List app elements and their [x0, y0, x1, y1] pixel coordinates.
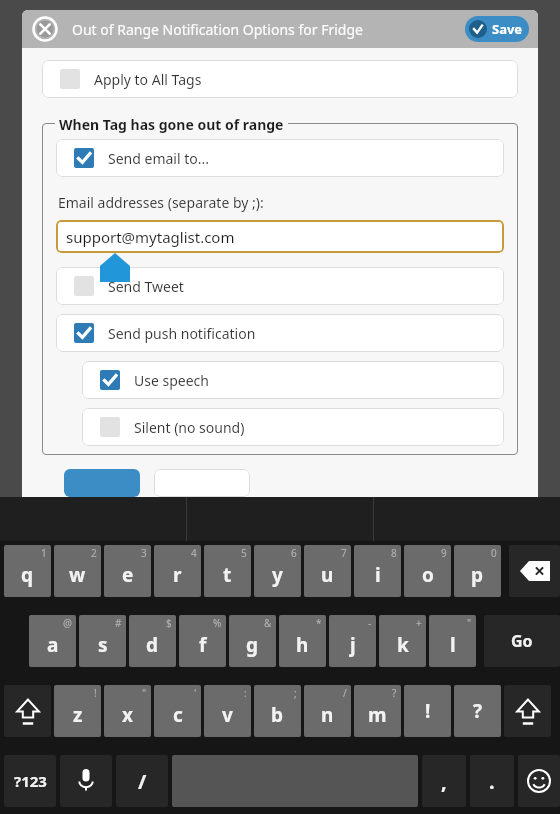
- staticText: /: [138, 768, 147, 795]
- staticText: g: [246, 632, 259, 658]
- button[interactable]: Send Tweet: [56, 267, 504, 305]
- button[interactable]: @: [29, 615, 76, 667]
- staticText: !: [94, 686, 97, 700]
- button[interactable]: Backspace: [509, 545, 560, 597]
- staticText: ?: [473, 698, 483, 724]
- staticText: y: [272, 562, 283, 588]
- button[interactable]: 8: [354, 545, 401, 597]
- button[interactable]: &: [229, 615, 276, 667]
- staticText: 0: [491, 546, 497, 560]
- staticText: k: [397, 632, 409, 658]
- staticText: Apply to All Tags: [94, 70, 202, 89]
- button[interactable]: Shift: [504, 685, 551, 737]
- staticText: ,: [441, 768, 447, 795]
- staticText: ?123: [14, 771, 47, 791]
- staticText: -: [368, 616, 372, 630]
- button[interactable]: ?: [454, 685, 501, 737]
- button[interactable]: /: [304, 685, 351, 737]
- staticText: v: [222, 702, 233, 728]
- button[interactable]: Silent (no sound): [82, 408, 504, 446]
- staticText: w: [69, 562, 86, 588]
- button[interactable]: ;: [254, 685, 301, 737]
- button[interactable]: Save: [465, 16, 529, 42]
- button[interactable]: ": [104, 685, 151, 737]
- staticText: @: [63, 616, 72, 630]
- staticText: m: [368, 702, 387, 728]
- staticText: o: [422, 562, 434, 588]
- button[interactable]: Close: [32, 16, 58, 42]
- button[interactable]: /: [116, 755, 168, 807]
- button[interactable]: *: [279, 615, 326, 667]
- button[interactable]: -: [329, 615, 376, 667]
- staticText: 9: [441, 546, 447, 560]
- staticText: q: [21, 562, 34, 588]
- button[interactable]: ": [429, 615, 476, 667]
- button[interactable]: :: [204, 685, 251, 737]
- staticText: ": [142, 686, 147, 700]
- staticText: %: [213, 616, 222, 630]
- staticText: z: [73, 702, 83, 728]
- staticText: .: [489, 768, 495, 795]
- staticText: u: [321, 562, 334, 588]
- button[interactable]: Use speech: [82, 361, 504, 399]
- staticText: j: [350, 632, 356, 658]
- button[interactable]: [154, 469, 250, 497]
- staticText: 4: [191, 546, 197, 560]
- button[interactable]: 7: [304, 545, 351, 597]
- button[interactable]: Send push notification: [56, 314, 504, 352]
- button[interactable]: support@mytaglist.com: [56, 220, 504, 253]
- staticText: 6: [291, 546, 297, 560]
- staticText: ': [194, 686, 197, 700]
- button[interactable]: ?123: [4, 755, 56, 807]
- staticText: f: [199, 632, 207, 658]
- button[interactable]: 9: [404, 545, 451, 597]
- staticText: :: [244, 686, 247, 700]
- staticText: 1: [41, 546, 47, 560]
- button[interactable]: 6: [254, 545, 301, 597]
- button[interactable]: !: [54, 685, 101, 737]
- staticText: When Tag has gone out of range: [59, 115, 284, 134]
- staticText: c: [173, 702, 183, 728]
- button[interactable]: ?: [354, 685, 401, 737]
- staticText: l: [450, 632, 456, 658]
- staticText: Send email to...: [108, 149, 209, 168]
- staticText: Out of Range Notification Options for Fr…: [72, 20, 363, 39]
- button[interactable]: 0: [454, 545, 501, 597]
- staticText: ;: [294, 686, 297, 700]
- button[interactable]: #: [79, 615, 126, 667]
- button[interactable]: Send email to...: [56, 139, 504, 177]
- button[interactable]: ': [154, 685, 201, 737]
- button[interactable]: +: [379, 615, 426, 667]
- staticText: support@mytaglist.com: [66, 227, 235, 247]
- staticText: Send push notification: [108, 324, 256, 343]
- staticText: $: [166, 616, 172, 630]
- staticText: Silent (no sound): [134, 418, 245, 437]
- button[interactable]: 2: [54, 545, 101, 597]
- staticText: ": [467, 616, 472, 630]
- button[interactable]: 4: [154, 545, 201, 597]
- staticText: p: [471, 562, 484, 588]
- staticText: !: [425, 698, 431, 724]
- staticText: Save: [492, 20, 523, 38]
- staticText: a: [47, 632, 59, 658]
- staticText: *: [316, 616, 322, 630]
- button[interactable]: Shift: [4, 685, 51, 737]
- button[interactable]: 1: [4, 545, 51, 597]
- button[interactable]: %: [179, 615, 226, 667]
- button[interactable]: Go: [484, 615, 560, 667]
- button[interactable]: !: [404, 685, 451, 737]
- staticText: e: [122, 562, 134, 588]
- button[interactable]: Emoji: [518, 755, 560, 807]
- button[interactable]: Apply to All Tags: [42, 60, 518, 98]
- button[interactable]: Voice input: [60, 755, 112, 807]
- staticText: Go: [511, 630, 533, 652]
- staticText: x: [122, 702, 133, 728]
- button[interactable]: $: [129, 615, 176, 667]
- button[interactable]: .: [470, 755, 514, 807]
- button[interactable]: 3: [104, 545, 151, 597]
- button[interactable]: ,: [422, 755, 466, 807]
- staticText: t: [223, 562, 232, 588]
- button[interactable]: 5: [204, 545, 251, 597]
- button[interactable]: [64, 469, 140, 497]
